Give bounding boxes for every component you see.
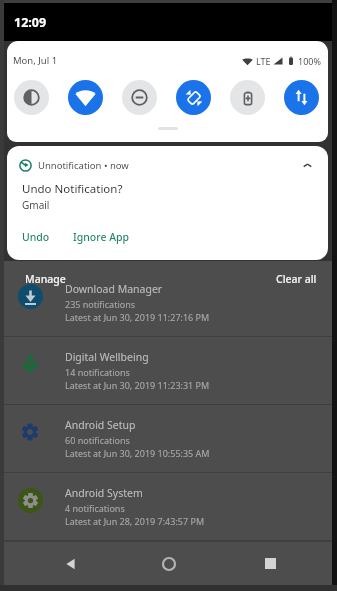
button[interactable] [68, 80, 103, 115]
staticText: LTE [256, 55, 271, 67]
staticText: Latest at Jun 30, 2019 10:55:35 AM [65, 447, 210, 459]
button[interactable]: Manage [4, 270, 76, 288]
staticText: Latest at Jun 30, 2019 11:27:16 PM [65, 311, 210, 323]
staticText: Latest at Jun 30, 2019 11:23:31 PM [65, 379, 210, 391]
button[interactable]: Android Setup [4, 405, 332, 472]
button[interactable]: Undo [20, 226, 52, 248]
button[interactable]: Home [147, 542, 191, 585]
staticText: Clear all [276, 272, 317, 286]
staticText: 12:09 [14, 14, 47, 31]
button[interactable]: Collapse [300, 158, 314, 172]
staticText: Unnotification • now [38, 159, 129, 172]
staticText: Manage [25, 272, 66, 286]
button[interactable] [176, 80, 211, 115]
staticText: 235 notifications [65, 298, 136, 310]
staticText: Digital Wellbeing [65, 350, 149, 364]
staticText: 4 notifications [65, 502, 125, 514]
staticText: Undo Notification? [22, 181, 123, 197]
button[interactable]: Clear all [266, 270, 332, 288]
staticText: Latest at Jun 28, 2019 7:43:57 PM [65, 515, 205, 527]
staticText: 60 notifications [65, 434, 130, 446]
staticText: Undo [22, 230, 50, 244]
button[interactable] [230, 80, 265, 115]
staticText: Mon, Jul 1 [13, 54, 58, 67]
button[interactable]: Download Manager [4, 269, 332, 336]
button[interactable]: Digital Wellbeing [4, 337, 332, 404]
staticText: Ignore App [73, 230, 130, 244]
button[interactable] [14, 80, 49, 115]
button[interactable] [122, 80, 157, 115]
staticText: Gmail [22, 198, 50, 212]
staticText: 100% [298, 55, 321, 67]
staticText: Download Manager [65, 282, 163, 296]
button[interactable]: Ignore App [71, 226, 132, 248]
button[interactable]: Back [49, 542, 93, 585]
button[interactable]: Android System [4, 473, 332, 540]
staticText: 14 notifications [65, 366, 130, 378]
button[interactable] [284, 80, 319, 115]
staticText: Android Setup [65, 418, 136, 432]
button[interactable]: Recent apps [248, 542, 292, 585]
staticText: Android System [65, 486, 143, 500]
